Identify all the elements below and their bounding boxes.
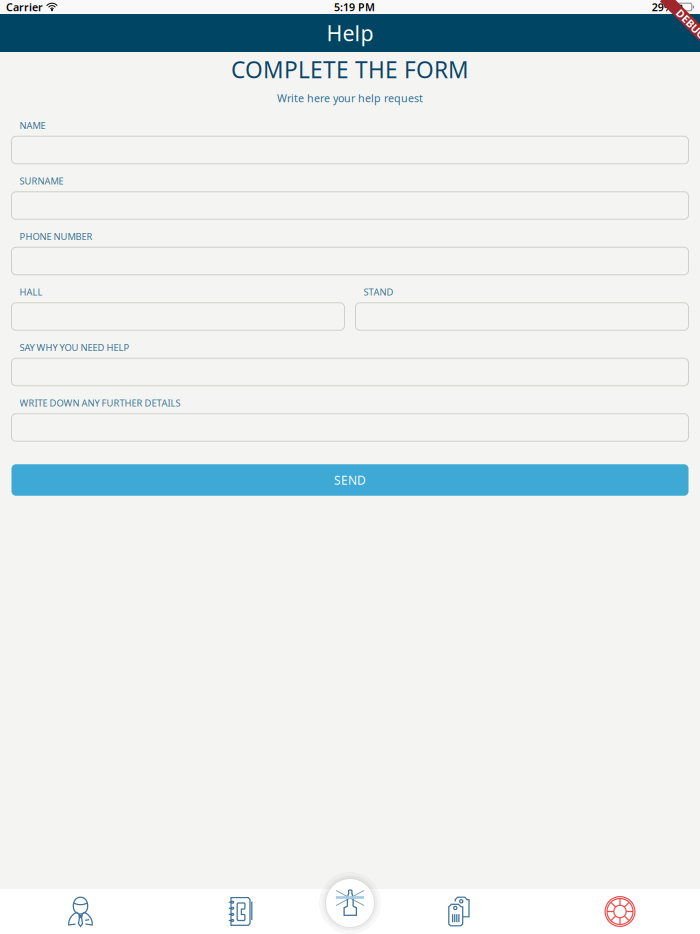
button[interactable]: [11, 192, 688, 219]
staticText: Write here your help request: [277, 91, 423, 105]
staticText: NAME: [19, 119, 45, 131]
staticText: COMPLETE THE FORM: [231, 54, 469, 85]
button[interactable]: Help: [540, 889, 700, 934]
staticText: 29%: [652, 0, 673, 14]
staticText: 5:19 PM: [334, 0, 375, 14]
staticText: SAY WHY YOU NEED HELP: [19, 341, 129, 353]
button[interactable]: Passes: [378, 889, 540, 934]
button[interactable]: [11, 136, 688, 164]
button[interactable]: [11, 358, 688, 386]
button[interactable]: Contacts: [161, 889, 321, 934]
button[interactable]: [355, 303, 688, 330]
staticText: DEBUG: [672, 17, 700, 31]
staticText: STAND: [363, 286, 393, 298]
button[interactable]: [11, 247, 688, 275]
staticText: Carrier: [6, 0, 43, 14]
button[interactable]: Staff: [0, 889, 161, 934]
button[interactable]: [11, 303, 344, 330]
button[interactable]: [11, 414, 688, 441]
staticText: SURNAME: [19, 175, 63, 187]
button[interactable]: SEND: [11, 464, 688, 496]
button[interactable]: Beacon: [319, 872, 381, 934]
staticText: WRITE DOWN ANY FURTHER DETAILS: [19, 397, 180, 409]
staticText: PHONE NUMBER: [19, 230, 92, 242]
staticText: HALL: [19, 286, 42, 298]
staticText: SEND: [334, 472, 366, 488]
staticText: Help: [326, 19, 373, 47]
